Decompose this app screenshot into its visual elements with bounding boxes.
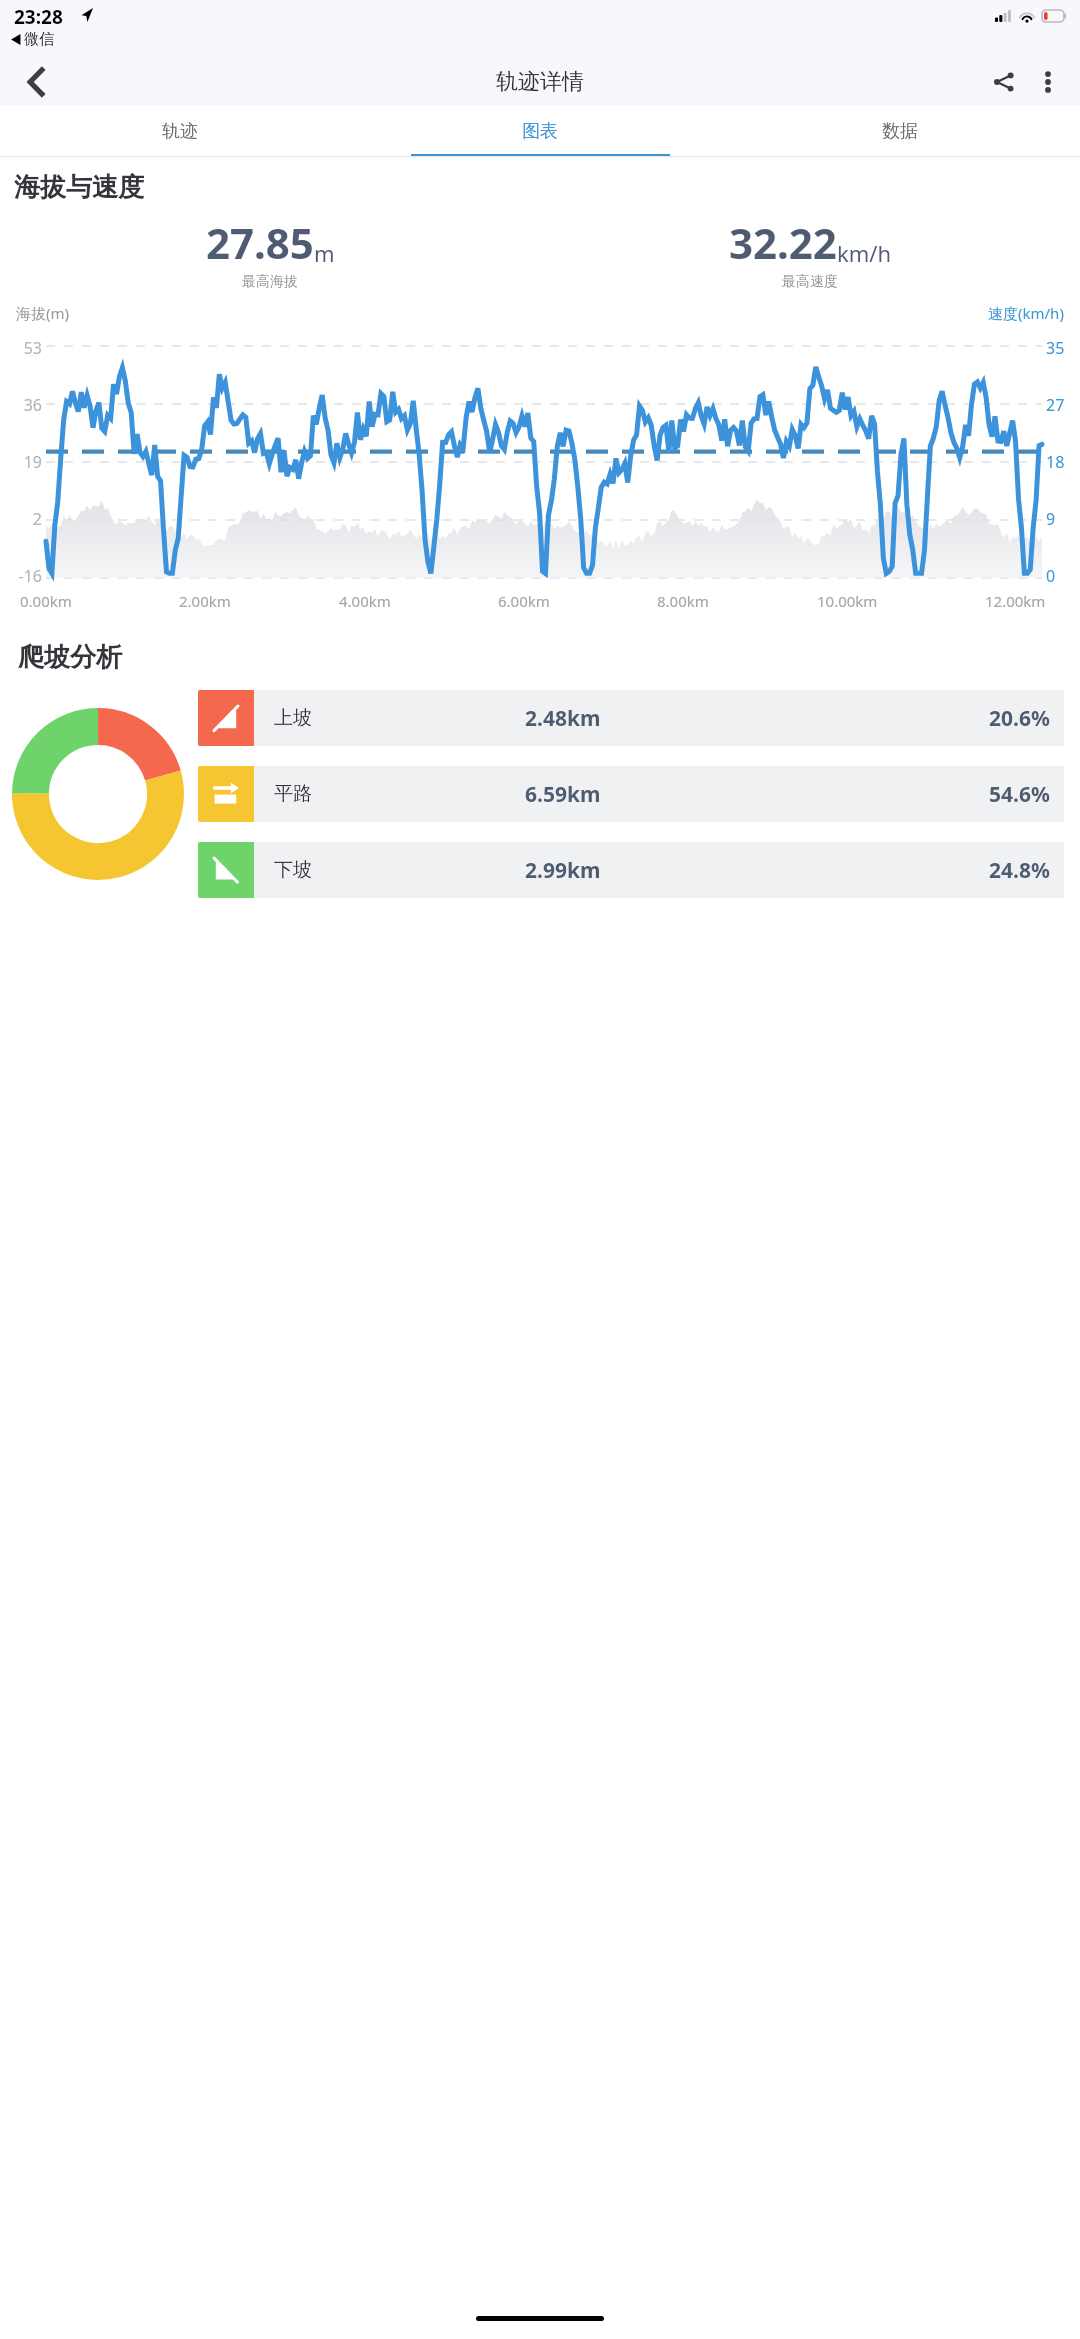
button[interactable]: 轨迹 (0, 105, 360, 157)
staticText: -16 (18, 565, 42, 587)
staticText: 下坡 (274, 858, 312, 882)
button[interactable]: 上坡 (198, 690, 1064, 746)
button[interactable]: Share (982, 60, 1026, 104)
staticText: 4.00km (339, 591, 391, 611)
staticText: 9 (1046, 508, 1056, 530)
staticText: 35 (1046, 337, 1065, 359)
staticText: 轨迹 (162, 120, 198, 143)
staticText: 27.85 (206, 214, 314, 271)
staticText: 海拔与速度 (14, 171, 144, 204)
staticText: 数据 (882, 120, 918, 143)
staticText: 24.8% (989, 856, 1050, 885)
button[interactable]: 数据 (720, 105, 1080, 157)
staticText: 最高海拔 (242, 273, 298, 291)
staticText: 0 (1046, 565, 1056, 587)
button[interactable]: More options (1026, 60, 1070, 104)
staticText: 27 (1046, 394, 1065, 416)
staticText: km/h (837, 238, 892, 268)
staticText: 0.00km (20, 591, 72, 611)
staticText: 18 (1046, 451, 1065, 473)
staticText: 上坡 (274, 706, 312, 730)
staticText: 8.00km (657, 591, 709, 611)
staticText: 36 (23, 394, 42, 416)
staticText: m (314, 238, 335, 268)
staticText: 2.00km (179, 591, 231, 611)
staticText: 53 (23, 337, 42, 359)
staticText: 最高速度 (782, 273, 838, 291)
button[interactable]: 图表 (360, 105, 720, 157)
staticText: 19 (23, 451, 42, 473)
staticText: 32.22 (729, 214, 837, 271)
staticText: 20.6% (989, 704, 1050, 733)
staticText: 6.59km (525, 780, 601, 809)
staticText: 23:28 (14, 4, 63, 30)
staticText: 10.00km (817, 591, 878, 611)
staticText: 2.99km (525, 856, 601, 885)
staticText: 速度(km/h) (988, 303, 1064, 323)
button[interactable]: Back (14, 60, 58, 104)
staticText: 2.48km (525, 704, 601, 733)
staticText: 2 (32, 508, 42, 530)
staticText: 轨迹详情 (496, 68, 584, 96)
staticText: 平路 (274, 782, 312, 806)
staticText: 12.00km (985, 591, 1046, 611)
staticText: 海拔(m) (16, 303, 70, 323)
button[interactable]: 平路 (198, 766, 1064, 822)
button[interactable]: 下坡 (198, 842, 1064, 898)
staticText: 54.6% (989, 780, 1050, 809)
staticText: 微信 (24, 30, 54, 49)
staticText: 图表 (522, 120, 558, 143)
staticText: 6.00km (498, 591, 550, 611)
staticText: 爬坡分析 (18, 641, 122, 674)
